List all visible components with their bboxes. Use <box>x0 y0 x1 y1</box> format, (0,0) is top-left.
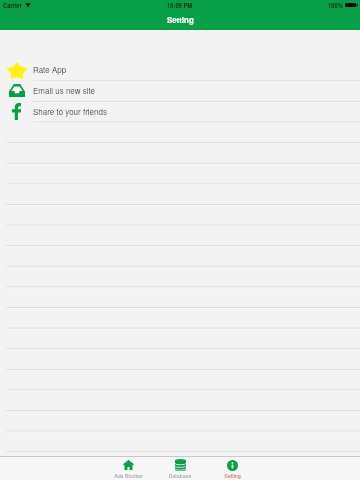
button[interactable]: Rate App <box>0 60 360 81</box>
staticText: Setting <box>167 14 194 25</box>
button[interactable]: Email us new site <box>0 81 360 102</box>
button[interactable]: Setting <box>206 457 258 480</box>
staticText: 10:09 PM <box>167 1 193 9</box>
staticText: 100% <box>328 1 343 9</box>
staticText: Rate App <box>33 64 67 75</box>
button[interactable]: Database <box>154 457 206 480</box>
staticText: Setting <box>224 472 241 480</box>
staticText: Database <box>168 472 192 480</box>
staticText: Email us new site <box>33 85 96 96</box>
staticText: Carrier <box>3 1 23 9</box>
button[interactable]: Share to your friends <box>0 102 360 123</box>
staticText: Ads Blocker <box>114 472 143 480</box>
button[interactable]: Ads Blocker <box>102 457 154 480</box>
staticText: Share to your friends <box>33 106 107 117</box>
